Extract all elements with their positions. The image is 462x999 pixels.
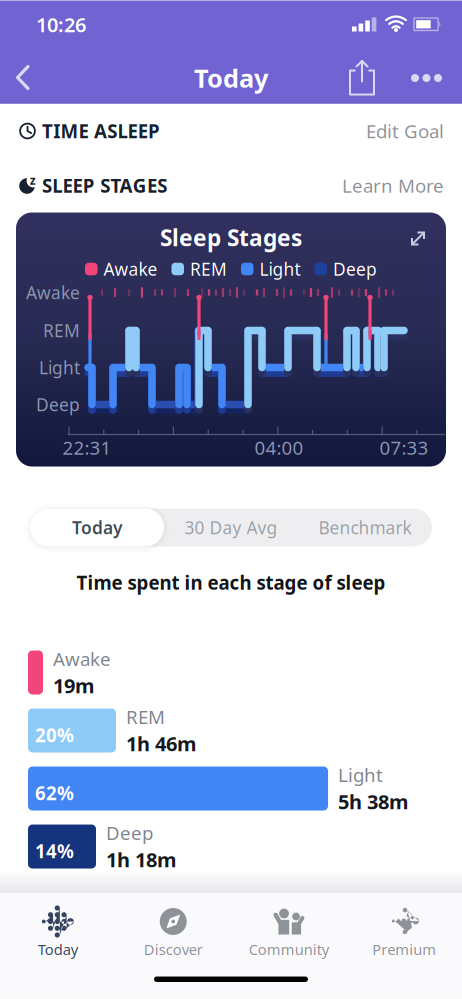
staticText: Edit Goal bbox=[366, 119, 444, 143]
staticText: Today bbox=[38, 939, 78, 959]
staticText: 5h 38m bbox=[338, 788, 409, 815]
staticText: Light bbox=[338, 762, 383, 787]
staticText: z bbox=[30, 172, 36, 188]
staticText: Awake bbox=[26, 281, 80, 304]
button[interactable] bbox=[14, 62, 44, 92]
staticText: Community bbox=[249, 939, 329, 959]
button[interactable]: 30 Day Avg bbox=[164, 508, 298, 546]
staticText: Deep bbox=[333, 257, 377, 280]
staticText: Awake bbox=[53, 646, 111, 671]
staticText: 04:00 bbox=[254, 435, 303, 460]
staticText: 22:31 bbox=[62, 435, 111, 460]
staticText: Light bbox=[39, 356, 80, 379]
staticText: REM bbox=[126, 704, 165, 729]
staticText: Deep bbox=[36, 393, 80, 416]
staticText: Awake bbox=[103, 257, 157, 280]
button[interactable]: Learn More bbox=[314, 174, 444, 196]
staticText: 1h 46m bbox=[126, 730, 197, 757]
staticText: Benchmark bbox=[318, 516, 411, 539]
staticText: 30 Day Avg bbox=[184, 516, 277, 539]
button[interactable]: Today bbox=[0, 906, 115, 959]
staticText: 1h 18m bbox=[106, 846, 177, 873]
staticText: Light bbox=[259, 257, 300, 280]
staticText: 62% bbox=[35, 781, 74, 805]
staticText: SLEEP STAGES bbox=[42, 173, 167, 198]
button[interactable] bbox=[411, 74, 442, 82]
staticText: Today bbox=[194, 61, 268, 95]
staticText: 20% bbox=[35, 723, 74, 747]
button[interactable] bbox=[347, 59, 377, 96]
staticText: 07:33 bbox=[379, 435, 428, 460]
staticText: Learn More bbox=[342, 173, 444, 198]
staticText: 14% bbox=[35, 839, 74, 863]
staticText: REM bbox=[43, 319, 80, 342]
staticText: 19m bbox=[53, 672, 95, 699]
button[interactable]: Today bbox=[30, 508, 164, 546]
staticText: Discover bbox=[144, 939, 203, 959]
button[interactable]: Discover bbox=[115, 906, 231, 959]
staticText: Premium bbox=[372, 939, 436, 959]
staticText: TIME ASLEEP bbox=[42, 119, 160, 143]
button[interactable]: Community bbox=[231, 906, 346, 959]
staticText: 10:26 bbox=[36, 11, 86, 38]
staticText: Deep bbox=[106, 820, 153, 845]
button[interactable]: Edit Goal bbox=[314, 120, 444, 142]
button[interactable]: Benchmark bbox=[298, 508, 432, 546]
button[interactable] bbox=[408, 228, 428, 248]
staticText: Today bbox=[72, 516, 122, 539]
staticText: Sleep Stages bbox=[160, 222, 302, 252]
button[interactable]: Premium bbox=[346, 906, 462, 959]
staticText: Time spent in each stage of sleep bbox=[76, 570, 385, 595]
staticText: REM bbox=[190, 257, 227, 280]
